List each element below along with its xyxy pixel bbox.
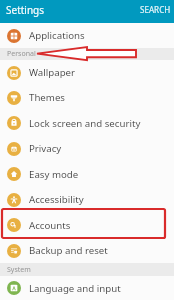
button[interactable]: Wallpaper [0, 60, 174, 85]
staticText: Applications [29, 29, 85, 42]
staticText: Accounts [29, 219, 71, 232]
staticText: Privacy [29, 142, 62, 155]
button[interactable]: Easy mode [0, 161, 174, 187]
staticText: Themes [29, 91, 65, 104]
staticText: System [7, 265, 31, 275]
button[interactable]: Language and input [0, 276, 174, 300]
button[interactable]: Accounts [0, 212, 174, 238]
button[interactable]: Backup and reset [0, 238, 174, 263]
staticText: Backup and reset [29, 244, 108, 257]
button[interactable]: Privacy [0, 136, 174, 161]
button[interactable]: Lock screen and security [0, 110, 174, 136]
staticText: SEARCH [140, 4, 171, 15]
staticText: Accessibility [29, 193, 84, 206]
button[interactable]: Applications [0, 23, 174, 48]
button[interactable]: Themes [0, 85, 174, 110]
staticText: Easy mode [29, 168, 79, 181]
button[interactable]: Accessibility [0, 187, 174, 212]
staticText: Language and input [29, 282, 121, 295]
staticText: Personal [7, 49, 36, 59]
staticText: Settings [6, 3, 45, 17]
staticText: Wallpaper [29, 66, 76, 79]
button[interactable]: SEARCH [136, 4, 174, 19]
staticText: Lock screen and security [29, 117, 141, 130]
